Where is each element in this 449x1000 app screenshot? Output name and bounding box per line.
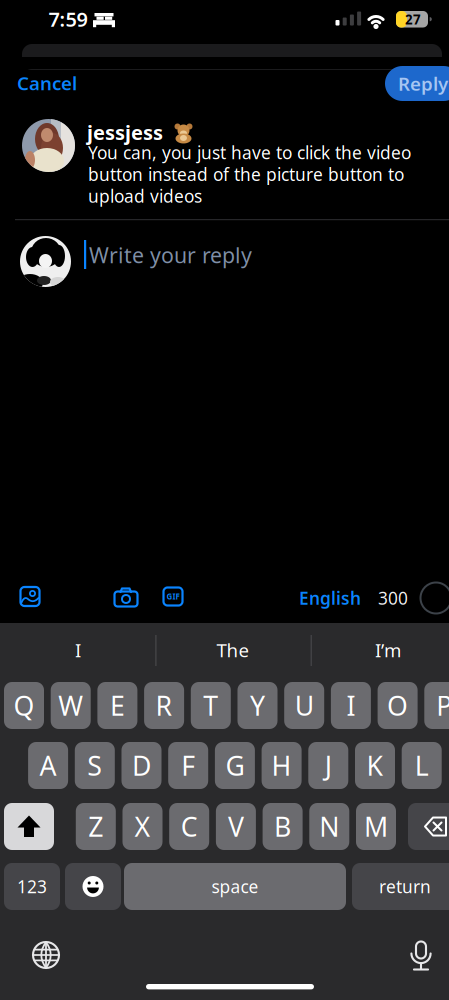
- button[interactable]: Reply: [385, 66, 449, 101]
- staticText: English: [299, 586, 361, 609]
- staticText: Reply: [398, 71, 448, 96]
- button[interactable]: X: [122, 803, 162, 850]
- button[interactable]: jessjess profile: [22, 119, 75, 172]
- staticText: I: [346, 688, 355, 723]
- staticText: I’m: [375, 638, 401, 662]
- button[interactable]: 123: [4, 863, 60, 910]
- staticText: C: [181, 809, 198, 844]
- staticText: S: [87, 748, 102, 783]
- staticText: I: [75, 638, 81, 662]
- staticText: Q: [13, 688, 34, 723]
- button[interactable]: Z: [76, 803, 116, 850]
- staticText: O: [387, 688, 408, 723]
- button[interactable]: R: [144, 682, 184, 729]
- staticText: space: [211, 875, 258, 898]
- button[interactable]: H: [262, 742, 302, 789]
- button[interactable]: Write your reply: [89, 240, 289, 270]
- staticText: J: [325, 748, 332, 783]
- button[interactable]: Shift: [4, 803, 54, 850]
- button[interactable]: Add photo: [19, 586, 43, 610]
- staticText: Write your reply: [89, 241, 252, 269]
- button[interactable]: I: [331, 682, 371, 729]
- staticText: X: [134, 809, 150, 844]
- button[interactable]: P: [424, 682, 449, 729]
- staticText: M: [364, 809, 388, 844]
- button[interactable]: The: [163, 627, 303, 673]
- staticText: U: [295, 688, 314, 723]
- button[interactable]: C: [169, 803, 209, 850]
- staticText: Y: [250, 688, 265, 723]
- staticText: B: [274, 809, 291, 844]
- staticText: N: [319, 809, 339, 844]
- staticText: L: [415, 748, 429, 783]
- button[interactable]: W: [51, 682, 91, 729]
- staticText: Cancel: [17, 71, 77, 95]
- staticText: jessjess: [87, 119, 163, 146]
- button[interactable]: English: [298, 586, 362, 610]
- button[interactable]: Cancel: [17, 71, 87, 95]
- button[interactable]: E: [97, 682, 137, 729]
- button[interactable]: Add GIF: [163, 587, 183, 606]
- button[interactable]: S: [75, 742, 115, 789]
- button[interactable]: K: [355, 742, 395, 789]
- button[interactable]: G: [215, 742, 255, 789]
- staticText: 300: [378, 586, 408, 609]
- button[interactable]: J: [308, 742, 348, 789]
- button[interactable]: Emoji: [65, 863, 121, 910]
- button[interactable]: I’m: [318, 627, 449, 673]
- button[interactable]: Camera: [113, 586, 139, 608]
- button[interactable]: Next keyboard: [32, 941, 60, 969]
- staticText: R: [156, 688, 173, 723]
- staticText: Z: [88, 809, 103, 844]
- button[interactable]: N: [309, 803, 349, 850]
- staticText: G: [225, 748, 244, 783]
- button[interactable]: Q: [4, 682, 44, 729]
- button[interactable]: D: [121, 742, 161, 789]
- staticText: return: [379, 875, 431, 898]
- staticText: T: [203, 688, 218, 723]
- staticText: 7:59: [48, 6, 87, 32]
- button[interactable]: return: [352, 863, 449, 910]
- staticText: F: [181, 748, 195, 783]
- staticText: P: [436, 688, 449, 723]
- button[interactable]: A: [28, 742, 68, 789]
- staticText: The: [216, 638, 249, 662]
- staticText: A: [40, 748, 57, 783]
- button[interactable]: L: [402, 742, 442, 789]
- staticText: D: [132, 748, 151, 783]
- staticText: H: [272, 748, 292, 783]
- staticText: GIF: [166, 591, 179, 602]
- button[interactable]: Delete: [408, 803, 449, 850]
- button[interactable]: V: [216, 803, 256, 850]
- staticText: V: [228, 809, 244, 844]
- staticText: W: [58, 688, 83, 723]
- button[interactable]: M: [356, 803, 396, 850]
- button[interactable]: O: [378, 682, 418, 729]
- button[interactable]: F: [168, 742, 208, 789]
- staticText: 123: [17, 875, 47, 898]
- button[interactable]: Y: [237, 682, 277, 729]
- button[interactable]: I: [8, 627, 148, 673]
- button[interactable]: Dictation: [411, 941, 431, 971]
- staticText: E: [110, 688, 125, 723]
- staticText: K: [366, 748, 383, 783]
- staticText: 27: [405, 10, 421, 28]
- button[interactable]: T: [191, 682, 231, 729]
- staticText: You can, you just have to click the vide…: [88, 141, 411, 208]
- button[interactable]: space: [124, 863, 346, 910]
- button[interactable]: B: [263, 803, 303, 850]
- button[interactable]: U: [284, 682, 324, 729]
